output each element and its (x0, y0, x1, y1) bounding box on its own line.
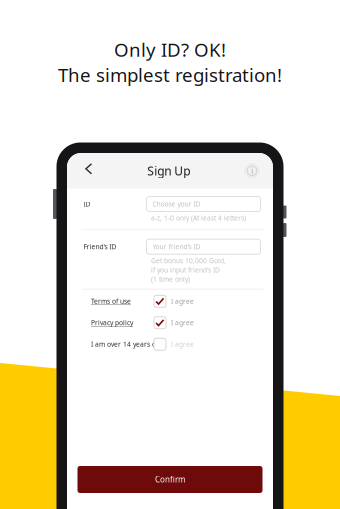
staticText: Confirm (155, 474, 185, 485)
button[interactable]: Terms of use (91, 290, 261, 312)
staticText: The simplest registration! (58, 62, 282, 87)
staticText: Your friend's ID (152, 242, 200, 251)
button[interactable]: Privacy policy (91, 312, 261, 333)
staticText: i (251, 165, 253, 177)
button[interactable]: Confirm (77, 466, 262, 493)
staticText: I agree (171, 297, 194, 306)
staticText: I am over 14 years old (91, 340, 162, 349)
button[interactable]: Information (244, 153, 273, 188)
staticText: Friend's ID (83, 242, 116, 251)
staticText: Only ID? OK! (114, 37, 226, 62)
staticText: I agree (171, 340, 194, 349)
staticText: a-z, 1-0 only (At least 4 letters) (151, 213, 246, 222)
button[interactable]: I am over 14 years old (91, 333, 261, 355)
staticText: Choose your ID (152, 200, 200, 208)
staticText: if you input friend's ID (151, 265, 220, 274)
staticText: ID (83, 200, 90, 208)
staticText: Privacy policy (91, 318, 133, 327)
staticText: I agree (171, 318, 194, 327)
button[interactable]: Back (67, 154, 93, 187)
staticText: Sign Up (147, 163, 190, 179)
staticText: Terms of use (91, 297, 131, 306)
staticText: (1 time only) (151, 275, 190, 284)
staticText: Get bonus 10,000 Gold, (151, 256, 226, 265)
